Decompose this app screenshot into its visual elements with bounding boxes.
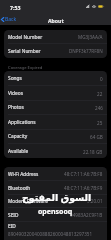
staticText: 04983A2C9F1B bbox=[70, 212, 103, 218]
staticText: 22.18 GB bbox=[83, 149, 103, 155]
staticText: Model Number bbox=[8, 34, 43, 41]
button[interactable]: Photos bbox=[4, 100, 107, 115]
button[interactable]: Available bbox=[4, 144, 107, 158]
staticText: 22 bbox=[97, 91, 103, 97]
button[interactable]: Bluetooth bbox=[4, 181, 107, 195]
button[interactable]: Songs bbox=[4, 71, 107, 86]
staticText: Songs bbox=[8, 75, 22, 82]
staticText: 0 bbox=[100, 76, 103, 82]
staticText: DNPF3k77RF8N bbox=[69, 48, 103, 54]
staticText: opensooq bbox=[38, 207, 73, 217]
staticText: Available bbox=[8, 148, 29, 155]
button[interactable]: Model Number bbox=[4, 30, 107, 44]
button[interactable]: Wi-Fi Address bbox=[4, 167, 107, 181]
staticText: 25 bbox=[97, 120, 103, 126]
button[interactable]: Capacity bbox=[4, 129, 107, 144]
staticText: EID bbox=[8, 223, 16, 230]
staticText: 48:C7:11:A6:7B:F9 bbox=[64, 185, 103, 191]
staticText: Wi-Fi Address bbox=[8, 171, 39, 178]
staticText: 7:53 bbox=[10, 4, 21, 11]
staticText: Photos bbox=[8, 104, 24, 111]
staticText: 5.20.01 bbox=[87, 198, 103, 204]
staticText: Capacity bbox=[8, 133, 28, 140]
staticText: السوق المفتوح bbox=[22, 191, 92, 204]
button[interactable]: Back bbox=[0, 15, 20, 24]
staticText: 48:C7:11:A6:7B:F8 bbox=[64, 171, 103, 177]
button[interactable]: SEID bbox=[4, 208, 107, 222]
staticText: Videos bbox=[8, 90, 23, 97]
staticText: About bbox=[48, 17, 64, 24]
staticText: Serial Number bbox=[8, 48, 41, 55]
button[interactable]: EID bbox=[4, 221, 107, 237]
staticText: Back bbox=[5, 16, 17, 23]
staticText: Modem Firmware bbox=[8, 198, 48, 205]
staticText: 89049032004008882600048813297351 bbox=[8, 231, 93, 237]
staticText: MG3J3AA/A bbox=[78, 34, 103, 40]
button[interactable]: Videos bbox=[4, 86, 107, 101]
button[interactable]: Applications bbox=[4, 115, 107, 130]
button[interactable]: Serial Number bbox=[4, 44, 107, 58]
button[interactable]: Modem Firmware bbox=[4, 194, 107, 208]
staticText: 246 bbox=[95, 105, 103, 111]
staticText: Bluetooth bbox=[8, 185, 31, 192]
staticText: 64 GB bbox=[90, 134, 103, 140]
staticText: Coverage Expired bbox=[8, 65, 43, 71]
staticText: SEID bbox=[8, 212, 19, 219]
staticText: Applications bbox=[8, 119, 36, 126]
